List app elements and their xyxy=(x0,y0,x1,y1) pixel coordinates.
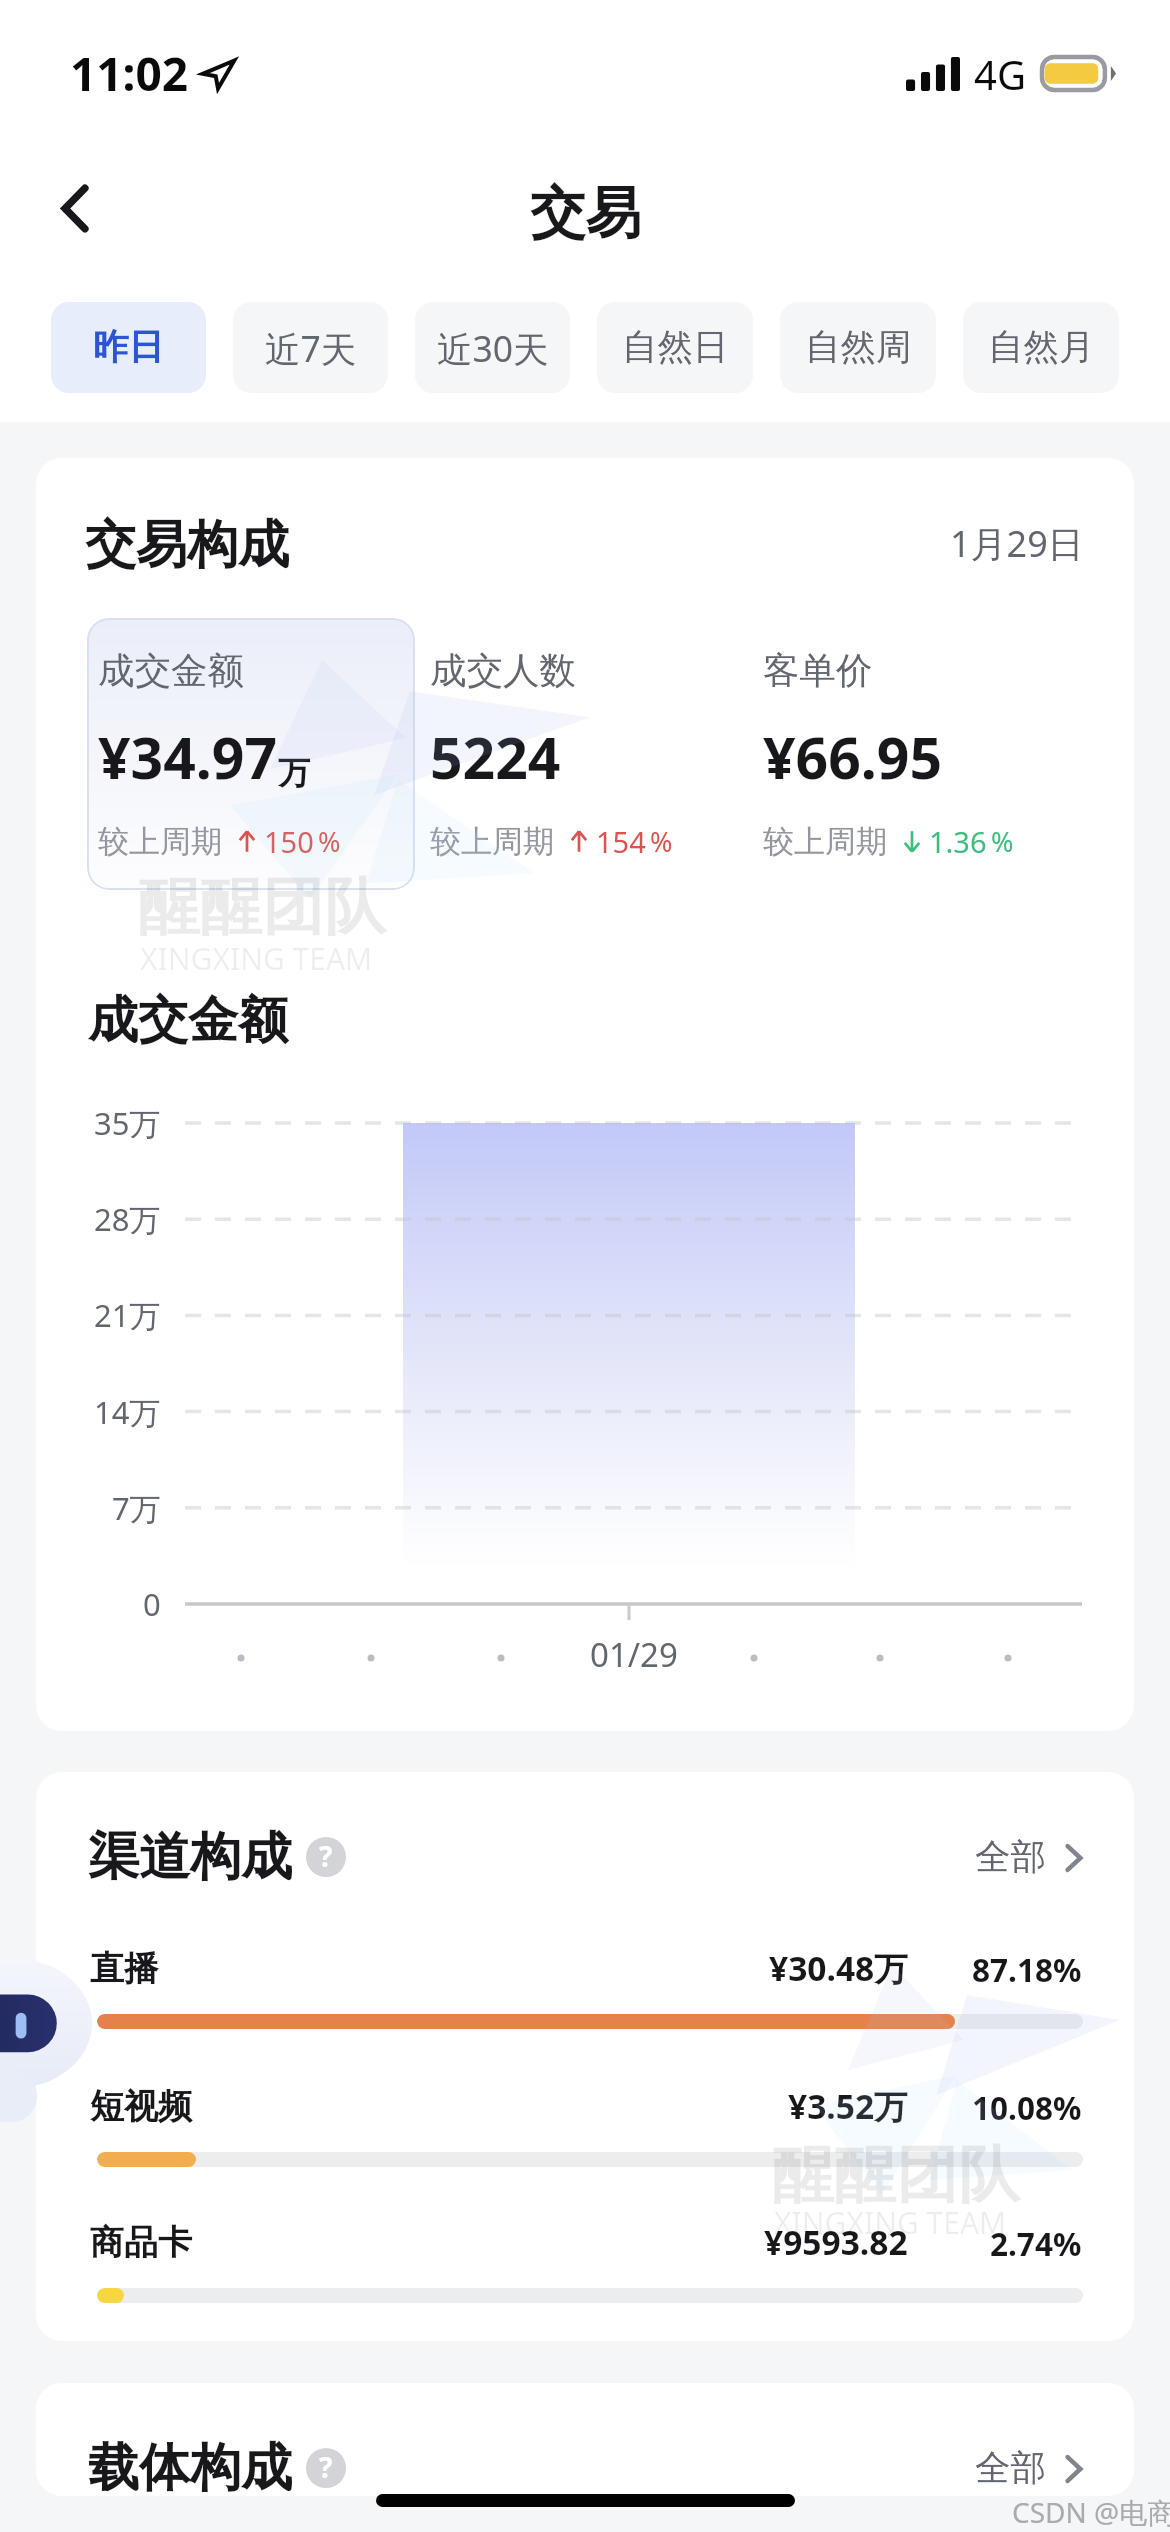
staticText: % xyxy=(318,823,341,860)
staticText: 21万 xyxy=(94,1294,161,1336)
button[interactable]: 短视频 xyxy=(36,2082,1134,2212)
button[interactable]: 全部 xyxy=(975,1835,1082,1880)
staticText: 1月29日 xyxy=(950,519,1084,568)
staticText: 87.18% xyxy=(972,1948,1082,1991)
staticText: 商品卡 xyxy=(90,2221,192,2264)
staticText: 成交金额 xyxy=(88,989,288,1052)
staticText: 10.08% xyxy=(972,2086,1082,2129)
staticText: ¥9593.82 xyxy=(764,2219,908,2265)
button[interactable]: Back xyxy=(42,175,108,241)
staticText: 全部 xyxy=(975,1835,1046,1880)
staticText: ? xyxy=(319,2448,333,2486)
button[interactable]: 近7天 xyxy=(233,302,388,393)
staticText: 14万 xyxy=(94,1391,161,1433)
staticText: 2.74% xyxy=(990,2222,1082,2265)
staticText: 醒醒团队 xyxy=(772,2136,1020,2214)
staticText: 渠道构成 xyxy=(88,1825,292,1889)
button[interactable]: 客单价 xyxy=(763,618,1095,890)
staticText: 万 xyxy=(278,753,310,793)
staticText: 成交金额 xyxy=(98,648,244,694)
button[interactable]: Help xyxy=(306,2448,346,2488)
staticText: 短视频 xyxy=(90,2085,192,2128)
staticText: 154 xyxy=(596,822,646,861)
button[interactable]: 成交金额 xyxy=(87,618,415,890)
staticText: 昨日 xyxy=(93,325,164,370)
button[interactable]: 自然月 xyxy=(963,302,1119,393)
staticText: ¥34.97 xyxy=(98,718,278,796)
staticText: XINGXING TEAM xyxy=(774,2202,1007,2243)
staticText: ? xyxy=(319,1837,333,1875)
staticText: 11:02 xyxy=(70,42,189,105)
button[interactable]: 自然周 xyxy=(780,302,936,393)
staticText: 5224 xyxy=(430,718,561,796)
button[interactable]: 昨日 xyxy=(51,302,206,393)
staticText: 7万 xyxy=(112,1487,161,1529)
staticText: 近7天 xyxy=(265,324,357,372)
staticText: 交易 xyxy=(530,179,641,249)
staticText: ¥66.95 xyxy=(763,718,943,796)
button[interactable]: 自然日 xyxy=(597,302,753,393)
staticText: 28万 xyxy=(94,1198,161,1240)
staticText: 较上周期 xyxy=(98,822,222,861)
staticText: 1.36 xyxy=(929,822,987,861)
staticText: 全部 xyxy=(975,2446,1046,2491)
staticText: 35万 xyxy=(94,1102,161,1144)
staticText: CSDN @电商年年 xyxy=(1012,2493,1170,2531)
staticText: 较上周期 xyxy=(763,822,887,861)
staticText: 4G xyxy=(974,47,1026,101)
staticText: 较上周期 xyxy=(430,822,554,861)
staticText: 0 xyxy=(143,1583,161,1625)
staticText: 醒醒团队 xyxy=(138,868,386,946)
button[interactable]: 成交人数 xyxy=(430,618,762,890)
staticText: XINGXING TEAM xyxy=(140,938,373,979)
staticText: 载体构成 xyxy=(88,2436,292,2496)
staticText: 交易构成 xyxy=(85,513,289,577)
staticText: 自然周 xyxy=(805,325,912,370)
button[interactable]: 近30天 xyxy=(415,302,570,393)
staticText: 近30天 xyxy=(437,324,549,372)
staticText: ¥3.52万 xyxy=(788,2083,908,2129)
button[interactable]: Help xyxy=(306,1837,346,1877)
button[interactable]: 直播 xyxy=(36,1944,1134,2074)
staticText: 成交人数 xyxy=(430,648,576,694)
staticText: 客单价 xyxy=(763,648,873,694)
staticText: 直播 xyxy=(90,1947,158,1990)
staticText: 150 xyxy=(264,822,314,861)
staticText: ¥30.48万 xyxy=(769,1945,908,1991)
staticText: 自然日 xyxy=(622,325,729,370)
button[interactable]: 全部 xyxy=(975,2446,1082,2491)
button[interactable]: 商品卡 xyxy=(36,2218,1134,2341)
staticText: % xyxy=(991,823,1014,860)
staticText: % xyxy=(650,823,673,860)
staticText: 01/29 xyxy=(590,1632,678,1677)
staticText: 自然月 xyxy=(988,325,1095,370)
